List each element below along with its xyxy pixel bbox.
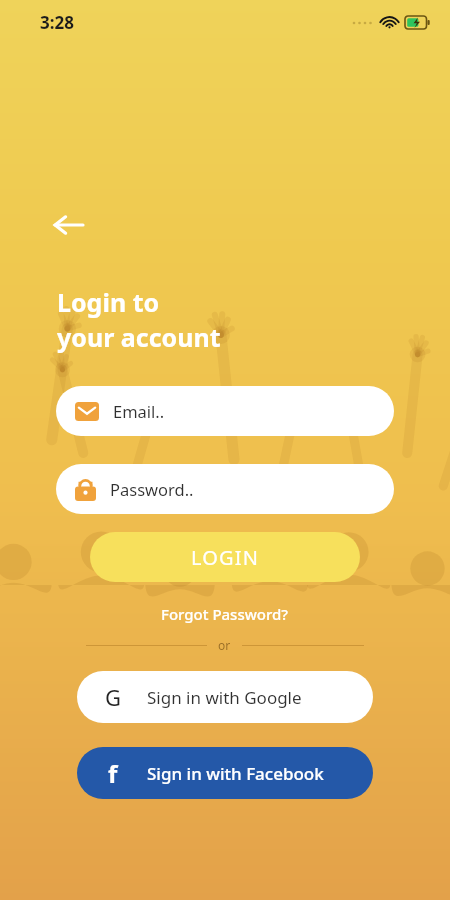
staticText: Email.. (113, 400, 165, 422)
staticText: Forgot Password? (161, 604, 289, 624)
staticText: Login to your account (57, 285, 221, 355)
staticText: Password.. (110, 478, 194, 500)
button[interactable]: Forgot Password? (155, 598, 295, 630)
staticText: or (218, 637, 231, 653)
staticText: f (108, 757, 118, 790)
staticText: G (105, 682, 122, 712)
button[interactable]: Password.. (56, 464, 394, 514)
staticText: LOGIN (191, 544, 260, 571)
button[interactable]: G (77, 671, 373, 723)
staticText: 3:28 (40, 11, 74, 34)
button[interactable]: Back (46, 203, 90, 247)
button[interactable]: f (77, 747, 373, 799)
button[interactable]: LOGIN (90, 532, 360, 582)
button[interactable]: Email.. (56, 386, 394, 436)
staticText: Sign in with Google (147, 686, 302, 709)
staticText: Sign in with Facebook (147, 762, 324, 785)
